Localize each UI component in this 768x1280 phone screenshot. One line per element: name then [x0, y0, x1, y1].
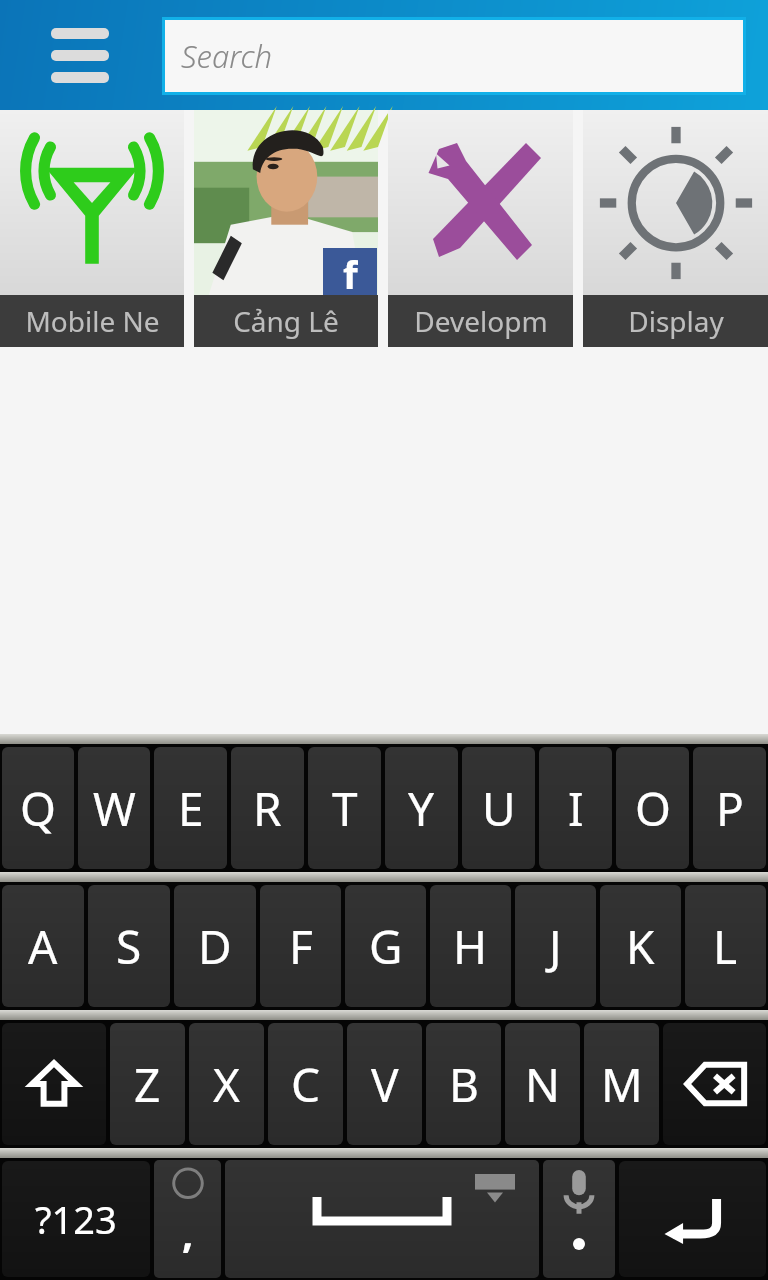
button[interactable]: P	[693, 747, 766, 869]
button[interactable]: N	[505, 1023, 580, 1145]
staticText: D	[198, 915, 232, 978]
button[interactable]: Y	[385, 747, 458, 869]
button[interactable]: Enter	[619, 1161, 766, 1277]
staticText: f	[343, 248, 358, 295]
staticText: Q	[20, 777, 56, 840]
staticText: T	[332, 777, 358, 840]
button[interactable]: M	[584, 1023, 659, 1145]
staticText: W	[93, 777, 136, 840]
button[interactable]: B	[426, 1023, 501, 1145]
button[interactable]: E	[154, 747, 227, 869]
button[interactable]: F	[260, 885, 341, 1007]
button[interactable]: T	[308, 747, 381, 869]
staticText: S	[116, 915, 142, 978]
button[interactable]: U	[462, 747, 535, 869]
button[interactable]: Search	[165, 20, 743, 92]
staticText: V	[371, 1053, 399, 1116]
button[interactable]: Comma and language	[154, 1160, 221, 1278]
button[interactable]: L	[685, 885, 766, 1007]
staticText: H	[453, 915, 488, 978]
staticText: Z	[134, 1053, 161, 1116]
staticText: C	[291, 1053, 321, 1116]
staticText: U	[482, 777, 516, 840]
button[interactable]: Symbols	[2, 1161, 150, 1277]
button[interactable]: X	[189, 1023, 264, 1145]
button[interactable]: Display	[583, 110, 768, 347]
button[interactable]: O	[616, 747, 689, 869]
staticText: N	[525, 1053, 560, 1116]
button[interactable]: R	[231, 747, 304, 869]
button[interactable]: K	[600, 885, 681, 1007]
button[interactable]: Shift	[2, 1023, 106, 1145]
staticText: X	[213, 1053, 240, 1116]
staticText: ,	[182, 1205, 194, 1259]
staticText: M	[601, 1053, 643, 1116]
button[interactable]: Space	[225, 1160, 539, 1278]
button[interactable]: I	[539, 747, 612, 869]
staticText: L	[713, 915, 738, 978]
staticText: G	[369, 915, 403, 978]
staticText: P	[716, 777, 744, 840]
staticText: R	[253, 777, 282, 840]
staticText: Developm	[414, 302, 548, 340]
button[interactable]: G	[345, 885, 426, 1007]
button[interactable]: Backspace	[663, 1023, 766, 1145]
staticText: E	[178, 777, 204, 840]
button[interactable]: H	[430, 885, 511, 1007]
staticText: A	[28, 915, 58, 978]
button[interactable]: D	[174, 885, 256, 1007]
button[interactable]: A	[2, 885, 84, 1007]
button[interactable]: J	[515, 885, 596, 1007]
button[interactable]: C	[268, 1023, 343, 1145]
staticText: Y	[408, 777, 435, 840]
staticText: I	[568, 777, 584, 840]
staticText: K	[626, 915, 655, 978]
button[interactable]: Z	[110, 1023, 185, 1145]
staticText: Cảng Lê	[233, 302, 339, 340]
staticText: Mobile Ne	[25, 302, 160, 340]
button[interactable]: Developm	[388, 110, 573, 347]
button[interactable]: f	[194, 110, 378, 347]
staticText: Display	[628, 302, 724, 340]
button[interactable]: S	[88, 885, 170, 1007]
staticText: Search	[181, 35, 272, 77]
button[interactable]: V	[347, 1023, 422, 1145]
button[interactable]: Q	[2, 747, 74, 869]
staticText: ?123	[35, 1193, 117, 1245]
button[interactable]: Menu	[36, 0, 124, 110]
button[interactable]: Mobile Ne	[0, 110, 184, 347]
button[interactable]: Voice input and period	[543, 1160, 615, 1278]
staticText: J	[549, 915, 562, 978]
staticText: F	[289, 915, 313, 978]
staticText: O	[635, 777, 671, 840]
staticText: B	[449, 1053, 479, 1116]
button[interactable]: W	[78, 747, 150, 869]
